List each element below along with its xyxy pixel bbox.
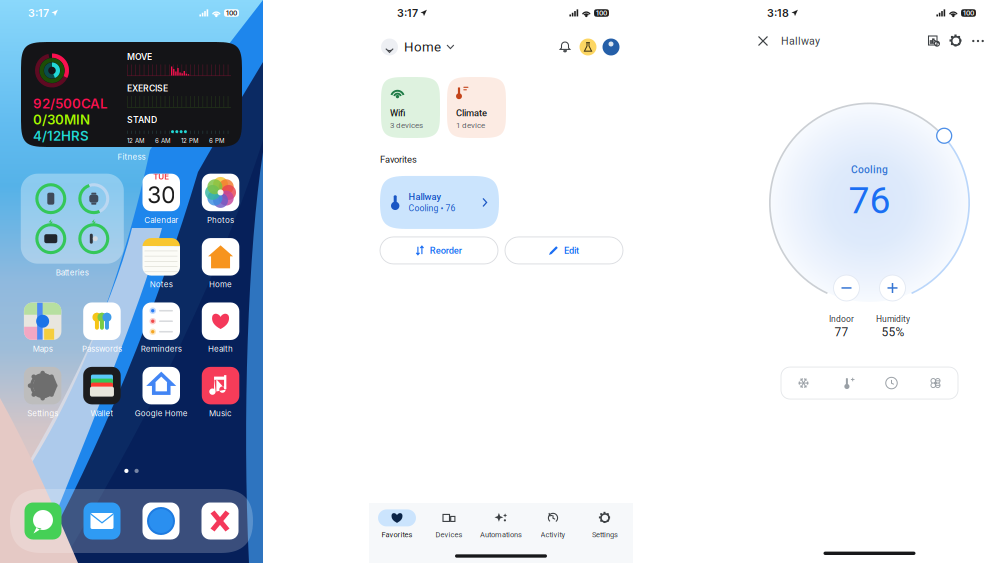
button[interactable]: Home xyxy=(191,238,250,302)
staticText: Health xyxy=(208,344,233,354)
staticText: 3 devices xyxy=(390,121,423,130)
staticText: 6 PM xyxy=(209,137,225,145)
staticText: 12 PM xyxy=(181,137,199,145)
button[interactable]: Notes xyxy=(132,238,191,302)
staticText: 55% xyxy=(881,325,904,339)
staticText: Notes xyxy=(150,280,173,289)
button[interactable]: Favorites xyxy=(371,506,423,542)
staticText: Settings xyxy=(27,408,58,418)
staticText: 100 xyxy=(963,9,974,17)
staticText: 6 AM xyxy=(155,137,171,145)
staticText: Automations xyxy=(480,530,522,539)
button[interactable]: Climate xyxy=(447,77,506,138)
button[interactable]: Heat xyxy=(825,367,869,399)
staticText: 4/12HRS xyxy=(33,128,89,144)
staticText: 1 device xyxy=(456,121,485,130)
staticText: 12 AM xyxy=(127,137,145,145)
staticText: Passwords xyxy=(82,344,122,354)
button[interactable]: Passwords xyxy=(72,302,132,367)
staticText: Climate xyxy=(456,108,487,119)
button[interactable]: More xyxy=(967,30,989,52)
staticText: 100 xyxy=(596,9,607,17)
staticText: 92/500CAL xyxy=(33,95,108,112)
staticText: Maps xyxy=(33,344,53,354)
button[interactable]: TUE xyxy=(132,174,191,238)
staticText: Batteries xyxy=(56,268,89,277)
staticText: Music xyxy=(209,408,232,418)
button[interactable]: Automations xyxy=(475,506,527,542)
button[interactable]: Health xyxy=(191,302,250,367)
button[interactable]: Wifi xyxy=(381,77,440,138)
button[interactable]: Photos xyxy=(191,174,250,238)
button[interactable]: Wallet xyxy=(72,367,132,431)
staticText: Photos xyxy=(207,215,234,225)
staticText: 100 xyxy=(226,9,237,17)
staticText: Calendar xyxy=(144,215,178,225)
button[interactable]: Reminders xyxy=(132,302,191,367)
button[interactable]: Activity xyxy=(527,506,579,542)
staticText: Home xyxy=(209,280,232,289)
button[interactable]: Notifications xyxy=(554,36,576,58)
staticText: 30 xyxy=(147,181,175,209)
staticText: Activity xyxy=(540,530,565,539)
staticText: MOVE xyxy=(127,51,152,62)
button[interactable]: Labs xyxy=(576,35,600,59)
button[interactable]: Settings xyxy=(13,367,72,431)
staticText: Fitness xyxy=(117,152,145,162)
staticText: 0/30MIN xyxy=(33,112,90,128)
button[interactable]: Account xyxy=(600,36,622,58)
button[interactable] xyxy=(72,489,131,553)
button[interactable]: Close xyxy=(753,30,773,52)
staticText: 3:17 xyxy=(397,6,418,19)
button[interactable] xyxy=(190,489,249,553)
staticText: Devices xyxy=(435,530,462,539)
button[interactable]: Fan xyxy=(913,367,957,399)
button[interactable]: Devices xyxy=(423,506,475,542)
button[interactable]: Settings xyxy=(945,30,967,52)
staticText: 3:18 xyxy=(767,6,789,19)
staticText: Settings xyxy=(592,530,618,539)
staticText: Favorites xyxy=(380,154,417,165)
staticText: Google Home xyxy=(135,408,188,418)
button[interactable]: 92/500CAL xyxy=(21,42,242,147)
button[interactable]: Increase temperature xyxy=(877,273,907,303)
staticText: Wifi xyxy=(390,108,405,119)
staticText: STAND xyxy=(127,115,157,125)
staticText: Wallet xyxy=(90,408,113,418)
button[interactable]: Settings xyxy=(579,506,631,542)
staticText: Cooling • 76 xyxy=(408,203,455,213)
button[interactable]: Batteries xyxy=(13,174,132,277)
staticText: 77 xyxy=(834,325,848,339)
staticText: 3:17 xyxy=(28,6,49,19)
button[interactable] xyxy=(13,489,72,553)
button[interactable] xyxy=(131,489,190,553)
button[interactable]: History xyxy=(923,30,945,52)
staticText: Reminders xyxy=(141,344,182,354)
staticText: TUE xyxy=(153,172,169,181)
staticText: Favorites xyxy=(381,530,412,539)
staticText: Reorder xyxy=(430,245,462,256)
staticText: EXERCISE xyxy=(127,83,168,94)
staticText: Hallway xyxy=(781,35,820,47)
staticText: Edit xyxy=(564,245,579,256)
staticText: Indoor xyxy=(829,314,854,324)
button[interactable]: Decrease temperature xyxy=(831,273,861,303)
staticText: Home xyxy=(404,39,441,55)
staticText: 76 xyxy=(848,179,890,222)
button[interactable]: Schedule xyxy=(869,367,913,399)
staticText: Cooling xyxy=(851,164,888,176)
button[interactable]: Maps xyxy=(13,302,72,367)
button[interactable]: Cool xyxy=(781,367,825,399)
staticText: Humidity xyxy=(876,314,910,324)
button[interactable]: Hallway xyxy=(380,176,499,229)
button[interactable]: Reorder xyxy=(380,237,498,264)
button[interactable]: Music xyxy=(191,367,250,431)
button[interactable]: Google Home xyxy=(132,367,191,431)
staticText: Hallway xyxy=(408,191,441,202)
button[interactable]: Edit xyxy=(505,237,623,264)
button[interactable]: Home xyxy=(381,38,454,55)
